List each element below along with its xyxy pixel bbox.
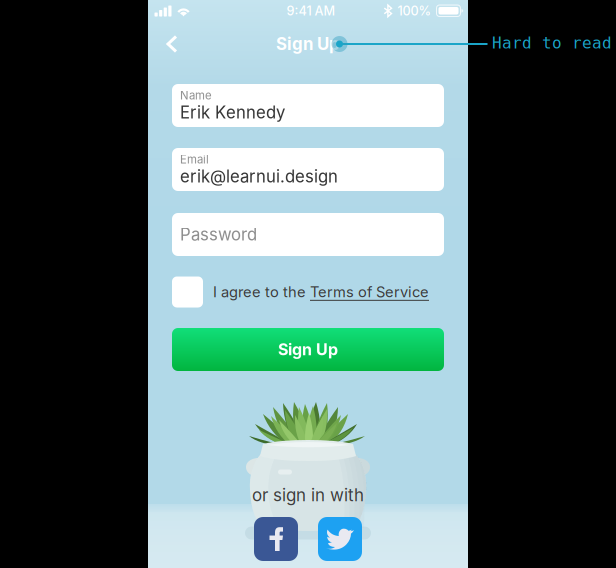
button[interactable]: Password <box>172 213 444 256</box>
staticText: or sign in with <box>252 485 364 505</box>
button[interactable]: Sign Up <box>172 328 444 371</box>
staticText: erik@learnui.design <box>180 166 338 186</box>
button[interactable]: Sign in with Facebook <box>254 517 298 561</box>
staticText: Password <box>180 224 257 245</box>
staticText: Email <box>180 153 209 166</box>
button[interactable]: Sign in with Twitter <box>318 517 362 561</box>
button[interactable]: Name <box>172 84 444 127</box>
staticText: Terms of Service <box>310 283 429 301</box>
button[interactable]: I agree to the Terms of Service <box>172 276 203 307</box>
staticText: Erik Kennedy <box>180 102 285 122</box>
staticText: Sign Up <box>276 34 340 54</box>
staticText: Hard to read <box>492 34 612 52</box>
staticText: Name <box>180 89 212 102</box>
button[interactable]: Back <box>154 23 190 65</box>
staticText: 9:41 AM <box>286 3 335 19</box>
button[interactable]: Email <box>172 148 444 191</box>
staticText: Sign Up <box>278 340 338 359</box>
button[interactable]: Terms of Service <box>310 283 429 301</box>
staticText: 100% <box>397 3 431 19</box>
staticText: I agree to the <box>213 283 310 301</box>
